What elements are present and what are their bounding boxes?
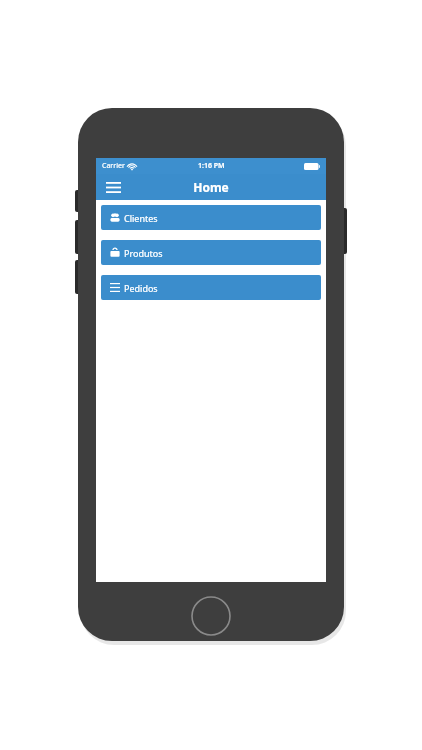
staticText: Clientes: [124, 212, 158, 224]
staticText: Produtos: [124, 247, 163, 259]
staticText: Pedidos: [124, 282, 158, 294]
staticText: Carrier: [102, 161, 125, 171]
button[interactable]: Menu: [100, 176, 126, 198]
staticText: 1:16 PM: [198, 161, 225, 171]
button[interactable]: Pedidos: [101, 275, 321, 300]
button[interactable]: Clientes: [101, 205, 321, 230]
staticText: Home: [193, 179, 229, 195]
button[interactable]: Produtos: [101, 240, 321, 265]
other: Home button: [191, 596, 231, 636]
